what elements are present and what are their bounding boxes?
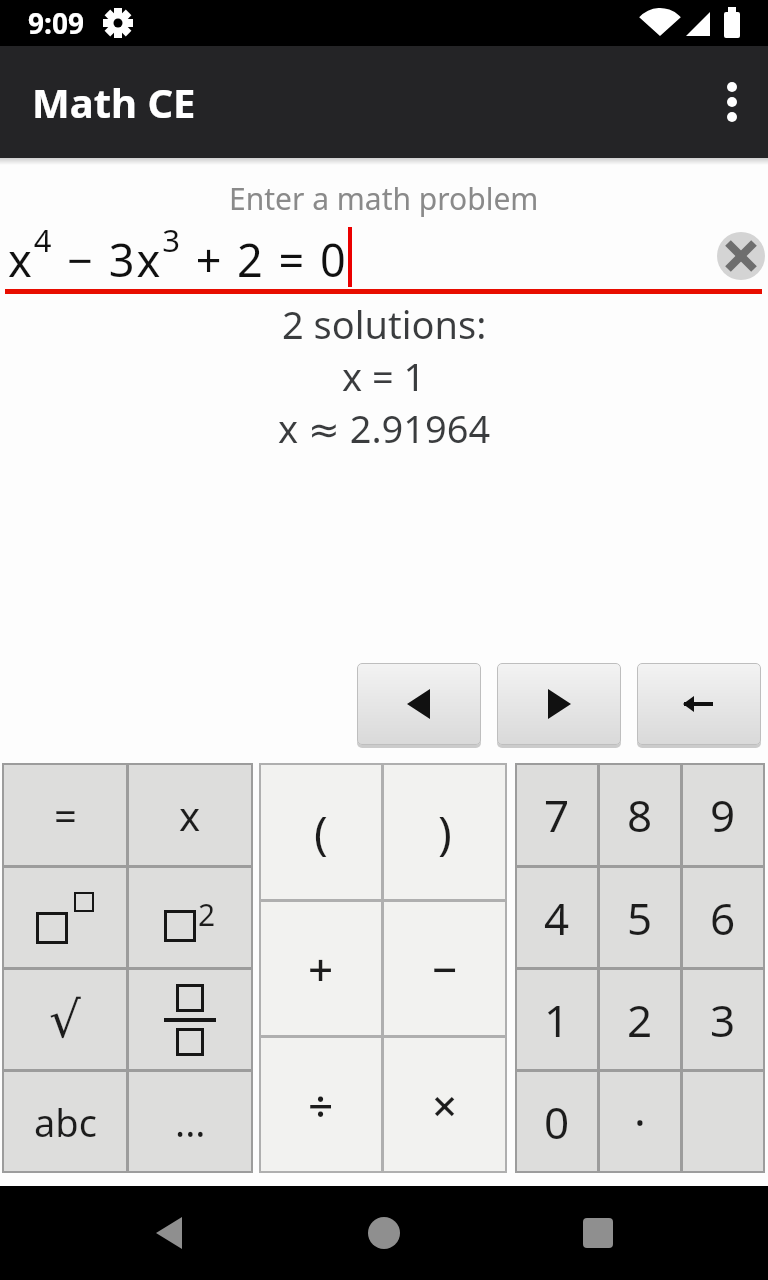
button[interactable] <box>637 663 761 745</box>
button[interactable] <box>582 1217 614 1249</box>
button[interactable]: × <box>384 1038 505 1171</box>
staticText: ÷ <box>308 1075 334 1135</box>
staticText: 2 <box>627 990 653 1050</box>
staticText: x = 1 <box>342 350 426 402</box>
staticText: 7 <box>544 785 570 845</box>
button[interactable] <box>368 1217 400 1249</box>
staticText: x ≈ 2.91964 <box>278 402 491 454</box>
button[interactable]: 2 <box>129 868 251 967</box>
staticText: 1 <box>544 990 570 1050</box>
button[interactable]: 6 <box>683 868 763 967</box>
staticText: 0 <box>544 1092 570 1152</box>
button[interactable] <box>129 970 251 1069</box>
staticText: x4 − 3x3 + 2 = 0 <box>8 219 348 289</box>
button[interactable]: 7 <box>517 765 597 865</box>
staticText: abc <box>34 1096 97 1148</box>
button[interactable]: 3 <box>683 970 763 1069</box>
button[interactable]: x <box>129 765 251 865</box>
button[interactable]: 5 <box>600 868 680 967</box>
button[interactable]: abc <box>4 1072 126 1171</box>
button[interactable]: − <box>384 902 505 1035</box>
staticText: Math CE <box>32 75 196 129</box>
button[interactable] <box>726 80 738 124</box>
button[interactable]: 4 <box>517 868 597 967</box>
staticText: √ <box>49 991 81 1049</box>
staticText: − <box>432 939 458 999</box>
staticText: 2 <box>198 894 216 935</box>
staticText: ( <box>314 801 328 864</box>
staticText: 2 solutions: <box>282 298 487 350</box>
button[interactable] <box>4 868 126 967</box>
staticText: 8 <box>627 785 653 845</box>
staticText: = <box>54 788 77 842</box>
button[interactable]: ÷ <box>261 1038 381 1171</box>
staticText: 3 <box>710 990 736 1050</box>
button[interactable]: = <box>4 765 126 865</box>
staticText: ... <box>175 1096 206 1148</box>
button[interactable]: ... <box>129 1072 251 1171</box>
staticText: · <box>634 1092 646 1152</box>
staticText: 9:09 <box>28 4 84 42</box>
staticText: 9 <box>710 785 736 845</box>
button[interactable]: 9 <box>683 765 763 865</box>
button[interactable] <box>717 232 765 280</box>
staticText: × <box>432 1075 458 1135</box>
button[interactable]: 8 <box>600 765 680 865</box>
button[interactable]: ( <box>261 765 381 899</box>
button[interactable]: 1 <box>517 970 597 1069</box>
staticText: 5 <box>627 888 653 948</box>
button[interactable]: 2 <box>600 970 680 1069</box>
staticText: ) <box>438 801 452 864</box>
staticText: 4 <box>544 888 570 948</box>
button[interactable] <box>154 1217 186 1249</box>
button[interactable]: √ <box>4 970 126 1069</box>
staticText: 6 <box>710 888 736 948</box>
staticText: Enter a math problem <box>229 178 539 219</box>
button[interactable]: · <box>600 1072 680 1171</box>
button[interactable] <box>357 663 481 745</box>
button[interactable]: ) <box>384 765 505 899</box>
staticText: x <box>179 788 201 842</box>
staticText: + <box>308 939 334 999</box>
button[interactable]: 0 <box>517 1072 597 1171</box>
button[interactable] <box>497 663 621 745</box>
button[interactable]: + <box>261 902 381 1035</box>
